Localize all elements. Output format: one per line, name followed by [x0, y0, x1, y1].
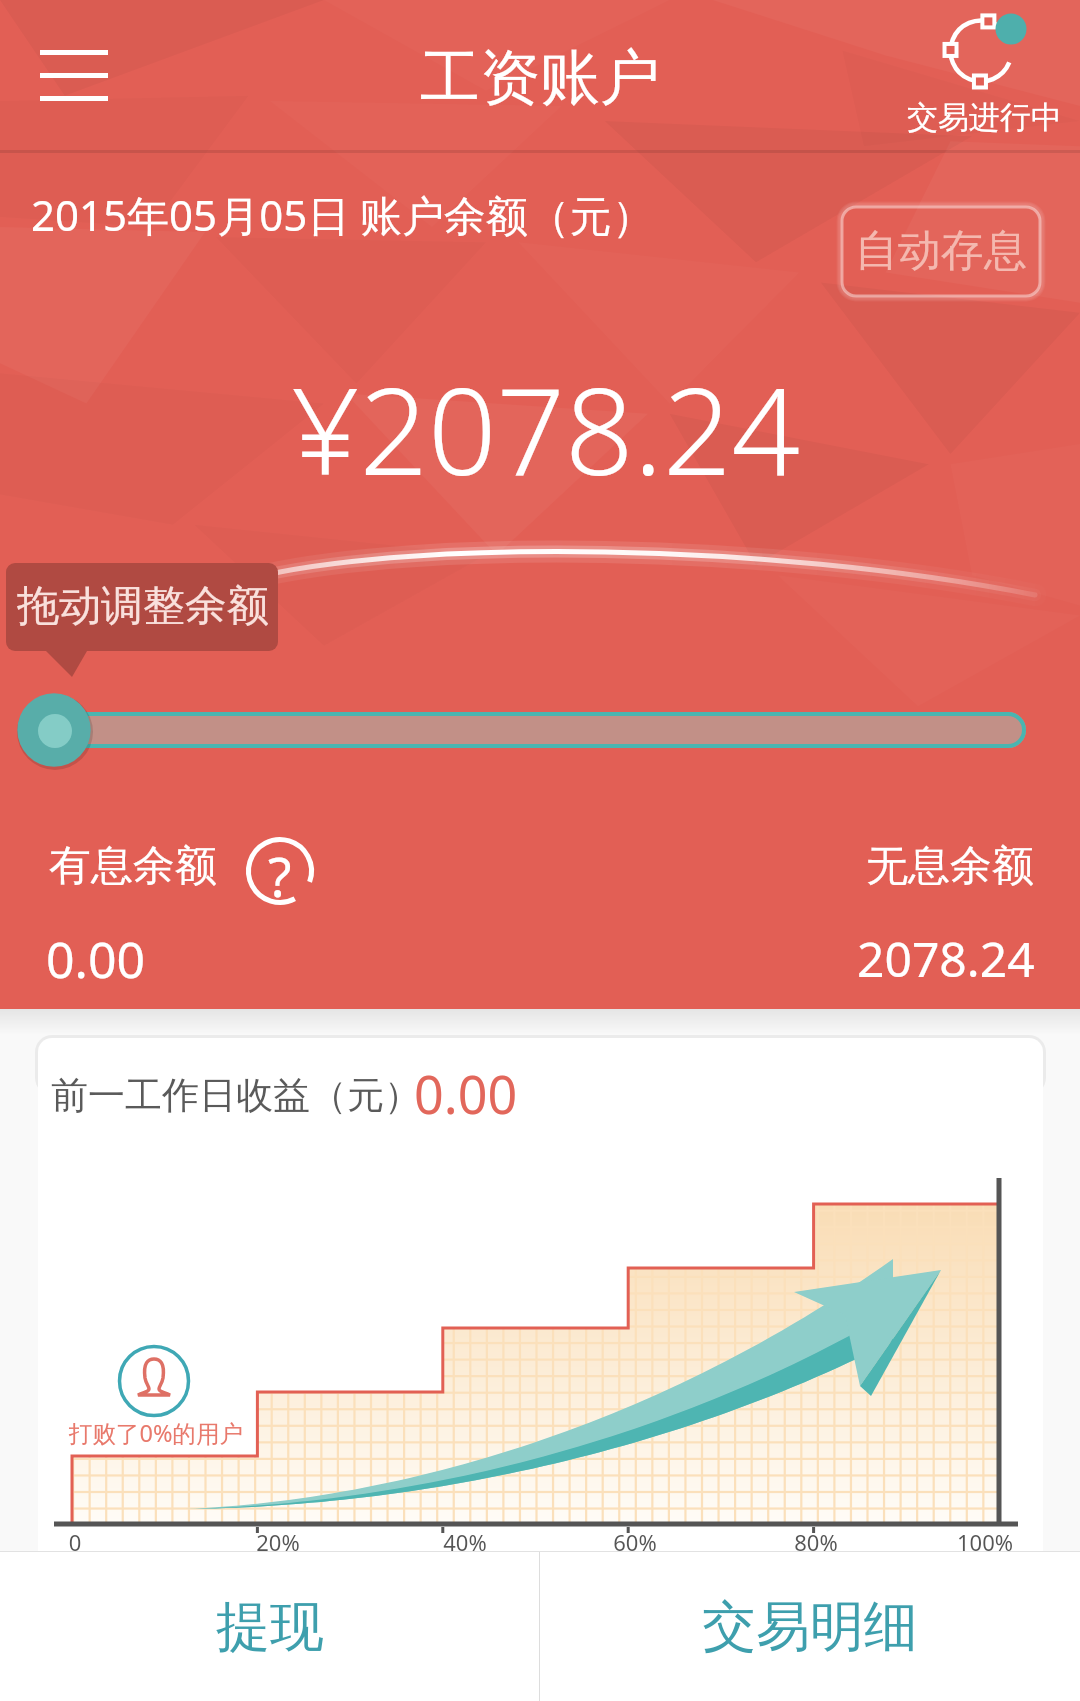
staticText: 40%: [425, 1527, 505, 1551]
staticText: ?: [268, 839, 292, 901]
staticText: 交易明细: [702, 1593, 918, 1661]
button[interactable]: Transaction in progress: [880, 2, 1076, 150]
staticText: ¥2078.24: [291, 347, 800, 510]
button[interactable]: 交易明细: [540, 1552, 1080, 1701]
button[interactable]: 自动存息: [838, 203, 1044, 300]
staticText: 80%: [776, 1527, 856, 1551]
staticText: 2015年05月05日 账户余额（元）: [31, 186, 655, 243]
staticText: 20%: [238, 1527, 318, 1551]
staticText: 打败了0%的用户: [69, 1417, 243, 1449]
staticText: 2078.24: [857, 926, 1035, 991]
staticText: 自动存息: [855, 224, 1027, 278]
button[interactable]: Adjust balance slider: [0, 690, 1080, 770]
staticText: 工资账户: [420, 40, 660, 116]
staticText: 0.00: [414, 1058, 518, 1129]
staticText: 有息余额: [49, 840, 217, 893]
staticText: 0: [38, 1527, 115, 1551]
staticText: 无息余额: [866, 840, 1034, 893]
staticText: 100%: [945, 1527, 1025, 1551]
staticText: 交易进行中: [907, 98, 1062, 137]
button[interactable]: 提现: [0, 1552, 539, 1701]
button[interactable]: Menu: [22, 28, 114, 122]
button[interactable]: Help: [249, 840, 311, 902]
staticText: 0.00: [46, 925, 146, 993]
staticText: 提现: [216, 1593, 324, 1661]
staticText: 60%: [595, 1527, 675, 1551]
staticText: 前一工作日收益（元）: [51, 1072, 421, 1119]
staticText: 拖动调整余额: [17, 580, 269, 633]
